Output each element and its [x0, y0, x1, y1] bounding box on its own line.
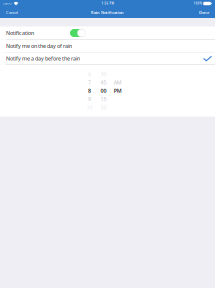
- staticText: Rain Notification: [91, 10, 124, 15]
- staticText: 1:56 PM: [101, 2, 113, 5]
- staticText: Cancel: [6, 10, 18, 15]
- staticText: 6: [88, 71, 91, 78]
- button[interactable]: Cancel: [4, 8, 20, 17]
- staticText: 45: [100, 79, 106, 86]
- staticText: 10: [86, 104, 92, 111]
- staticText: 100%: [194, 2, 202, 5]
- button[interactable]: Done: [197, 8, 211, 17]
- staticText: 15: [100, 95, 106, 103]
- staticText: 8: [88, 87, 91, 94]
- button[interactable]: Notification: [0, 26, 215, 39]
- staticText: 9: [88, 95, 91, 103]
- staticText: 00: [100, 87, 106, 94]
- staticText: AM: [114, 79, 122, 86]
- staticText: Carrier: [3, 2, 12, 5]
- button[interactable]: Notify me on the day of rain: [0, 40, 215, 52]
- staticText: Done: [199, 10, 209, 15]
- staticText: Notification: [6, 29, 34, 37]
- staticText: Notify me on the day of rain: [6, 42, 72, 50]
- staticText: Notify me a day before the rain: [6, 55, 80, 62]
- staticText: 30: [100, 104, 106, 111]
- staticText: 30: [100, 71, 106, 78]
- button[interactable]: Notify me a day before the rain: [0, 52, 215, 64]
- staticText: PM: [114, 87, 122, 94]
- staticText: 7: [88, 79, 91, 86]
